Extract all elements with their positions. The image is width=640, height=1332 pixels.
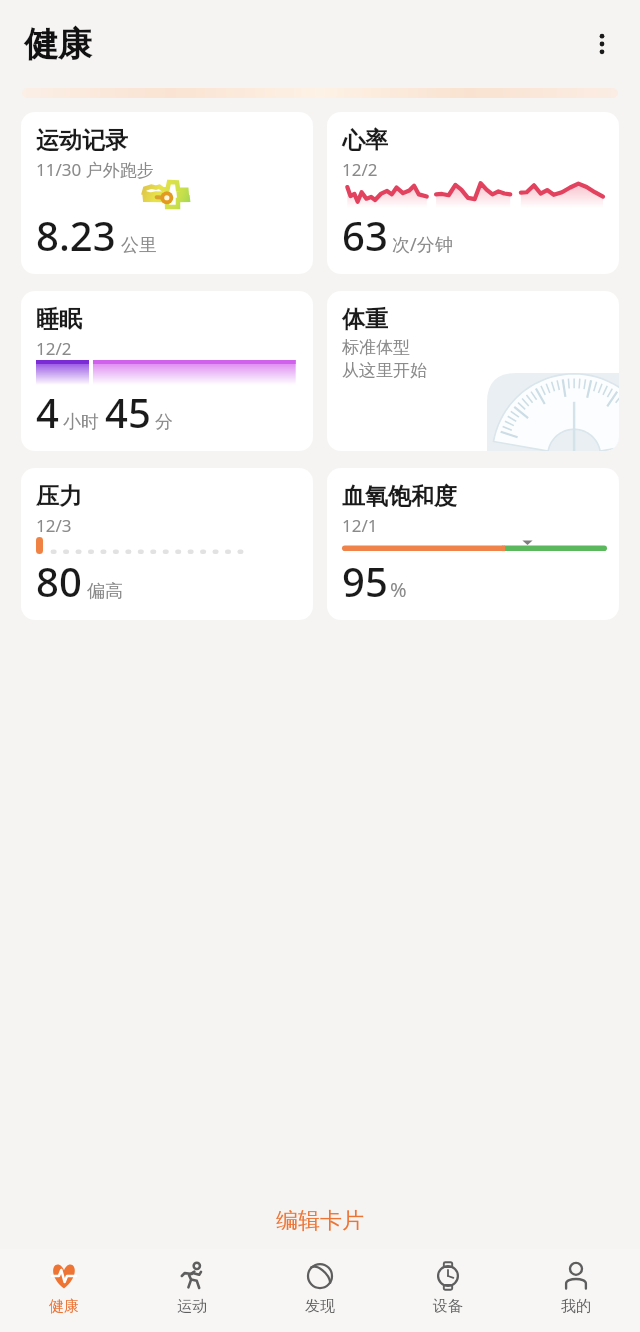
staticText: 从这里开始 [342,360,427,381]
staticText: 公里 [121,234,157,257]
staticText: 压力 [36,482,82,511]
staticText: 体重 [342,305,388,334]
staticText: 运动记录 [36,126,128,155]
button[interactable]: 血氧饱和度 [327,468,619,620]
staticText: 80 [36,554,82,608]
button[interactable]: 睡眠 [21,291,313,451]
staticText: 健康 [24,23,92,66]
staticText: 63 [342,208,388,262]
button[interactable]: Exercise tab [128,1255,256,1322]
staticText: 11/30 户外跑步 [36,158,154,181]
staticText: 小时 [63,411,99,434]
button[interactable]: 心率 [327,112,619,274]
staticText: 偏高 [87,580,123,603]
staticText: 12/3 [36,514,72,537]
staticText: 设备 [433,1297,463,1316]
staticText: 4 [36,385,59,439]
staticText: 运动 [177,1297,207,1316]
staticText: 12/1 [342,514,378,537]
staticText: 编辑卡片 [276,1207,364,1235]
staticText: 8.23 [36,208,116,262]
staticText: 我的 [561,1297,591,1316]
staticText: 95 [342,554,388,608]
staticText: 标准体型 [342,337,410,358]
staticText: 次/分钟 [392,232,453,257]
staticText: 心率 [342,126,388,155]
button[interactable]: Health tab [0,1255,128,1322]
staticText: 12/2 [36,337,72,360]
staticText: 睡眠 [36,305,82,334]
button[interactable]: 编辑卡片 [258,1201,382,1241]
button[interactable]: Profile tab [512,1255,640,1322]
staticText: 健康 [49,1297,79,1316]
staticText: 12/2 [342,158,378,181]
button[interactable]: 运动记录 [21,112,313,274]
button[interactable]: Devices tab [384,1255,512,1322]
staticText: 发现 [305,1297,335,1316]
button[interactable]: 压力 [21,468,313,620]
staticText: 45 [105,385,151,439]
button[interactable]: More options [578,20,626,68]
button[interactable]: 体重 [327,291,619,451]
staticText: 血氧饱和度 [342,482,457,511]
button[interactable]: Discover tab [256,1255,384,1322]
staticText: 分 [155,411,173,434]
staticText: % [390,576,407,603]
